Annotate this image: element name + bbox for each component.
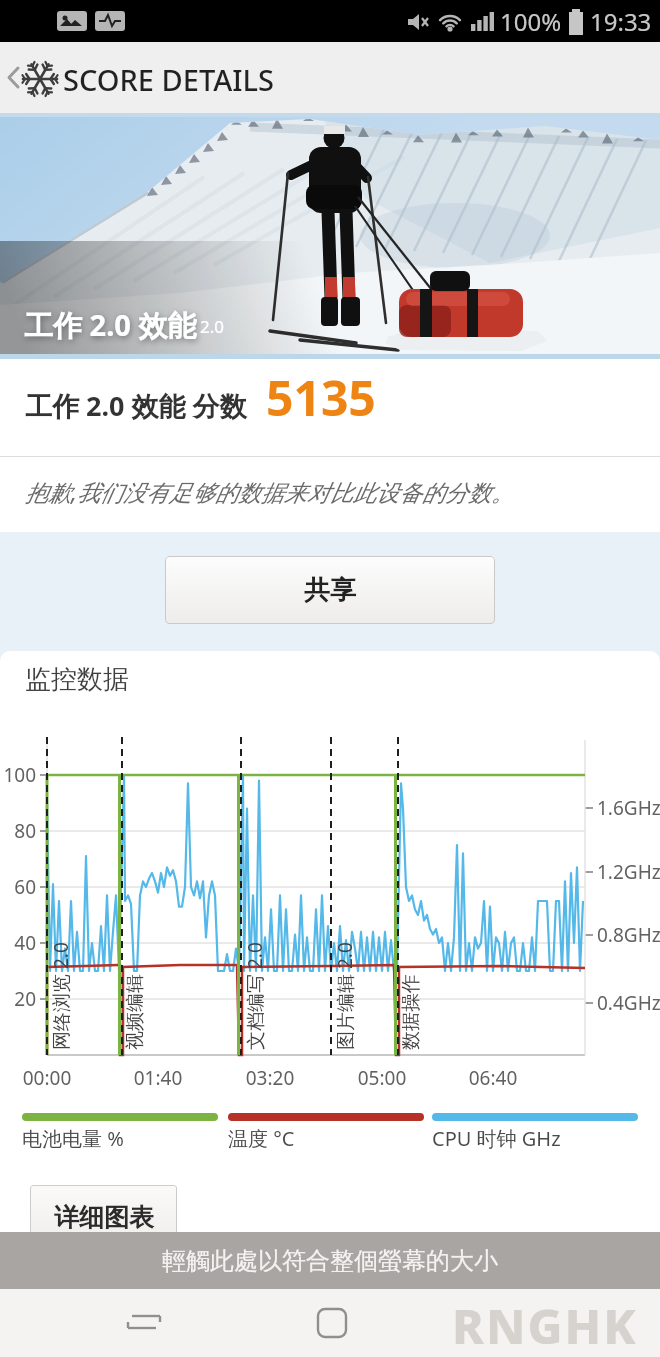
staticText: 100: [0, 762, 36, 788]
staticText: 温度 °C: [228, 1125, 295, 1152]
staticText: 2.0: [200, 315, 225, 338]
staticText: 监控数据: [25, 663, 129, 696]
staticText: 01:40: [123, 1065, 193, 1091]
staticText: 40: [0, 930, 36, 956]
staticText: 0.4GHz: [597, 990, 660, 1016]
staticText: 视频编辑: [123, 974, 147, 1050]
button[interactable]: [122, 1299, 170, 1347]
button[interactable]: 共享: [165, 556, 495, 624]
staticText: 00:00: [12, 1065, 82, 1091]
staticText: 共享: [304, 574, 356, 607]
staticText: 1.6GHz: [597, 795, 660, 821]
button[interactable]: 详细图表: [30, 1185, 177, 1249]
button[interactable]: SCORE DETAILS: [0, 42, 660, 113]
staticText: 06:40: [458, 1065, 528, 1091]
staticText: 03:20: [235, 1065, 305, 1091]
staticText: 100%: [500, 5, 562, 38]
staticText: 数据操作: [399, 974, 423, 1050]
staticText: 19:33: [590, 5, 652, 38]
button[interactable]: [308, 1299, 356, 1347]
staticText: 网络浏览 2.0: [48, 942, 72, 1050]
staticText: CPU 时钟 GHz: [432, 1125, 561, 1152]
staticText: 5135: [266, 365, 376, 430]
staticText: 图片编辑 2.0: [332, 942, 356, 1050]
staticText: 1.2GHz: [597, 859, 660, 885]
staticText: 抱歉,我们没有足够的数据来对比此设备的分数。: [25, 476, 514, 507]
staticText: 电池电量 %: [22, 1125, 124, 1152]
staticText: 文档编写 2.0: [242, 942, 266, 1050]
staticText: RNGHK: [452, 1293, 638, 1357]
staticText: SCORE DETAILS: [63, 60, 274, 99]
staticText: 60: [0, 874, 36, 900]
staticText: 0.8GHz: [597, 922, 660, 948]
button[interactable]: 輕觸此處以符合整個螢幕的大小: [0, 1232, 660, 1289]
staticText: 05:00: [347, 1065, 417, 1091]
staticText: 輕觸此處以符合整個螢幕的大小: [162, 1246, 498, 1276]
staticText: 工作 2.0 效能 分数: [25, 387, 247, 424]
staticText: 20: [0, 986, 36, 1012]
staticText: 详细图表: [54, 1202, 154, 1233]
staticText: 工作 2.0 效能: [24, 305, 197, 345]
staticText: 80: [0, 818, 36, 844]
